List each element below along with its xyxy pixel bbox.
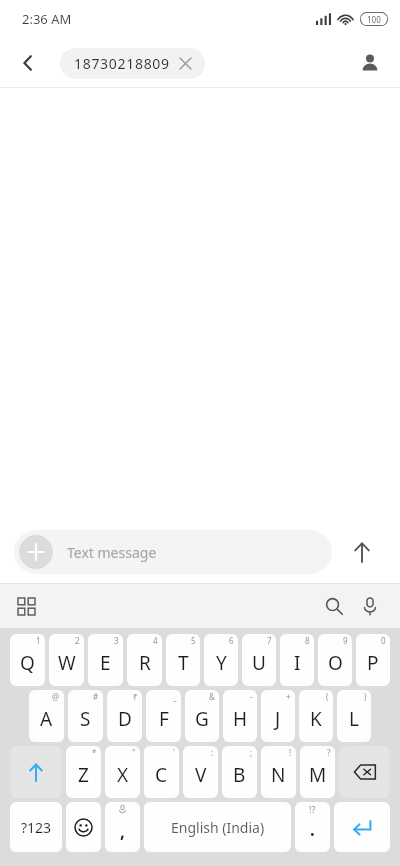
button[interactable]: Enter (334, 802, 390, 852)
staticText: T (178, 650, 189, 676)
staticText: 8 (305, 635, 310, 646)
staticText: @ (52, 691, 60, 702)
staticText: L (349, 706, 359, 732)
staticText: + (286, 691, 291, 702)
staticText: 7 (267, 635, 272, 646)
button[interactable]: 9 (318, 634, 352, 686)
staticText: ₹ (133, 691, 138, 702)
staticText: S (80, 706, 91, 732)
button[interactable]: 4 (127, 634, 162, 686)
staticText: * (92, 747, 97, 758)
button[interactable]: ₹ (107, 690, 142, 742)
button[interactable]: ( (299, 690, 333, 742)
button[interactable]: , (105, 802, 140, 852)
button[interactable]: 6 (204, 634, 238, 686)
staticText: P (367, 650, 379, 676)
button[interactable]: Back (8, 43, 48, 83)
button[interactable]: - (223, 690, 257, 742)
button[interactable]: 8 (280, 634, 314, 686)
button[interactable]: ! (261, 746, 296, 798)
staticText: Y (216, 650, 227, 676)
staticText: U (252, 650, 266, 676)
button[interactable]: _ (146, 690, 181, 742)
button[interactable]: Contact (350, 43, 390, 83)
staticText: C (155, 762, 168, 788)
staticText: ? (327, 747, 331, 758)
button[interactable]: : (183, 746, 218, 798)
button[interactable]: Send (340, 530, 384, 574)
staticText: Q (20, 650, 35, 676)
button[interactable]: * (66, 746, 101, 798)
button[interactable]: ) (337, 690, 371, 742)
button[interactable]: 0 (356, 634, 390, 686)
button[interactable]: + (261, 690, 295, 742)
button[interactable]: ; (222, 746, 257, 798)
staticText: 18730218809 (74, 54, 170, 73)
button[interactable]: English (India) (144, 802, 291, 852)
staticText: I (294, 650, 301, 676)
staticText: ; (250, 747, 253, 758)
staticText: Z (78, 762, 89, 788)
staticText: . (310, 818, 315, 841)
staticText: - (250, 691, 253, 702)
staticText: 1 (36, 635, 41, 646)
staticText: : (211, 747, 214, 758)
staticText: ( (326, 691, 329, 702)
button[interactable]: 5 (166, 634, 200, 686)
staticText: M (309, 762, 327, 788)
staticText: V (195, 762, 207, 788)
staticText: B (233, 762, 246, 788)
button[interactable]: Search (316, 588, 352, 624)
staticText: !? (309, 803, 316, 815)
staticText: 4 (153, 635, 158, 646)
button[interactable]: # (68, 690, 103, 742)
button[interactable]: 3 (88, 634, 123, 686)
staticText: ) (364, 691, 367, 702)
button[interactable]: Add attachment (14, 530, 332, 574)
button[interactable]: !? (295, 802, 330, 852)
staticText: R (139, 650, 151, 676)
button[interactable]: Keyboard options (8, 588, 44, 624)
staticText: , (120, 820, 125, 843)
staticText: _ (173, 691, 177, 702)
button[interactable]: " (105, 746, 140, 798)
staticText: 100 (367, 14, 381, 25)
staticText: ! (289, 747, 292, 758)
button[interactable]: ' (144, 746, 179, 798)
button[interactable]: Backspace (339, 746, 390, 798)
button[interactable]: 7 (242, 634, 276, 686)
button[interactable]: 1 (10, 634, 45, 686)
staticText: 6 (229, 635, 234, 646)
button[interactable]: Shift (10, 746, 62, 798)
staticText: & (209, 691, 215, 702)
staticText: W (58, 650, 76, 676)
staticText: ' (173, 747, 175, 758)
button[interactable]: Voice input (352, 588, 388, 624)
staticText: " (132, 747, 136, 758)
button[interactable]: 18730218809 (60, 48, 205, 79)
staticText: ?123 (21, 818, 52, 837)
staticText: O (328, 650, 343, 676)
staticText: 3 (114, 635, 119, 646)
staticText: A (40, 706, 53, 732)
button[interactable]: Emoji (66, 802, 101, 852)
button[interactable]: Add attachment (19, 535, 53, 569)
staticText: 9 (343, 635, 348, 646)
staticText: 2:36 AM (22, 10, 72, 28)
button[interactable]: ?123 (10, 802, 62, 852)
staticText: 2 (75, 635, 80, 646)
button[interactable]: 2 (49, 634, 84, 686)
staticText: J (275, 706, 281, 732)
staticText: G (195, 706, 209, 732)
staticText: D (118, 706, 132, 732)
button[interactable]: & (185, 690, 219, 742)
staticText: N (271, 762, 286, 788)
staticText: # (93, 691, 99, 702)
staticText: Text message (67, 543, 157, 562)
button[interactable]: ? (300, 746, 335, 798)
staticText: 0 (381, 635, 386, 646)
staticText: F (159, 706, 169, 732)
button[interactable]: @ (29, 690, 64, 742)
staticText: H (233, 706, 248, 732)
staticText: 5 (191, 635, 196, 646)
